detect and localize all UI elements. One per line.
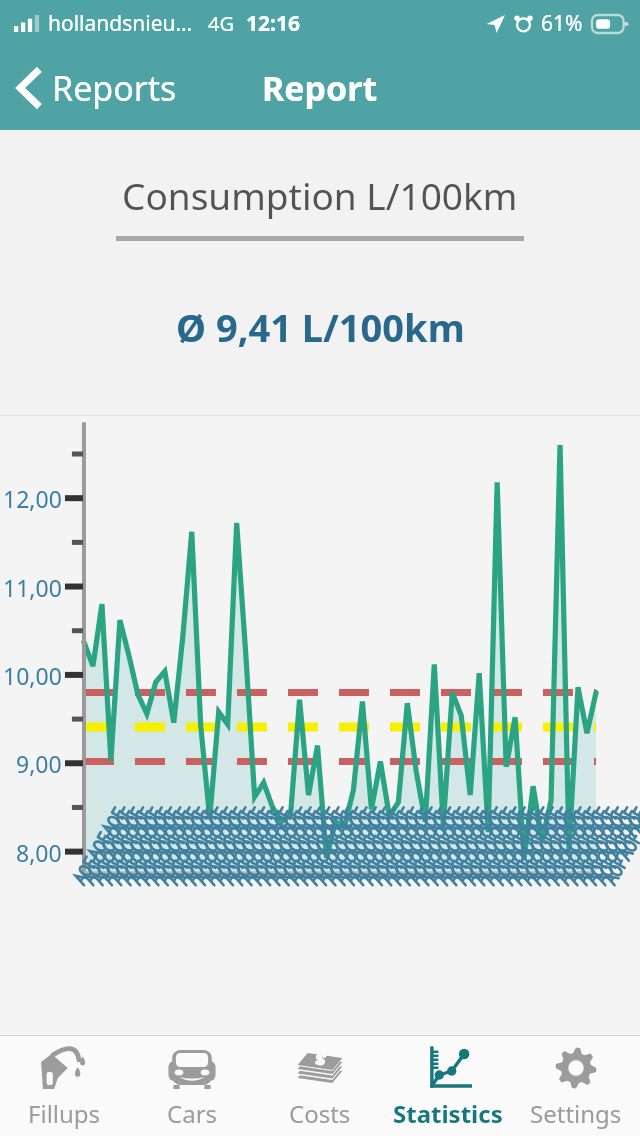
- staticText: Fillups: [28, 1097, 101, 1130]
- staticText: 61%: [541, 9, 583, 38]
- staticText: Reports: [52, 65, 177, 111]
- staticText: 12:16: [246, 9, 300, 38]
- staticText: Costs: [289, 1097, 351, 1130]
- staticText: 8,00: [16, 837, 62, 868]
- staticText: Settings: [530, 1097, 622, 1130]
- button[interactable]: Costs: [256, 1036, 384, 1136]
- staticText: 4G: [208, 10, 234, 37]
- button[interactable]: Statistics: [384, 1036, 512, 1136]
- button[interactable]: Cars: [128, 1036, 256, 1136]
- staticText: Consumption L/100km: [122, 170, 518, 220]
- staticText: Report: [262, 65, 378, 111]
- button[interactable]: Settings: [512, 1036, 640, 1136]
- button[interactable]: Reports: [8, 57, 187, 119]
- staticText: 9,00: [16, 748, 62, 779]
- staticText: Cars: [167, 1097, 218, 1130]
- staticText: hollandsnieu…: [48, 9, 193, 38]
- button[interactable]: Fillups: [0, 1036, 128, 1136]
- staticText: 12,00: [3, 483, 62, 514]
- staticText: 11,00: [3, 572, 62, 603]
- staticText: 10,00: [3, 660, 62, 691]
- staticText: Ø 9,41 L/100km: [176, 301, 465, 353]
- staticText: Statistics: [393, 1097, 503, 1130]
